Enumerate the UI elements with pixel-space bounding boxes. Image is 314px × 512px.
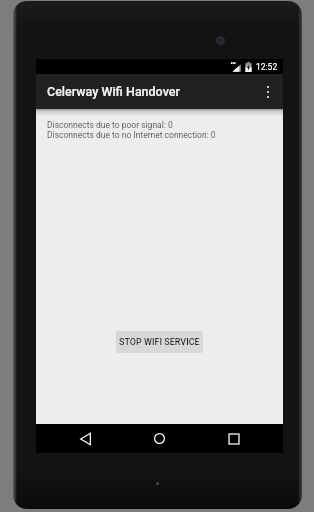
button[interactable]: Home — [139, 424, 180, 453]
button[interactable]: STOP WIFI SERVICE — [116, 331, 203, 353]
staticText: STOP WIFI SERVICE — [119, 337, 200, 348]
button[interactable]: Back — [65, 424, 106, 453]
staticText: 12:52 — [256, 62, 278, 72]
button[interactable]: Recent apps — [213, 424, 254, 453]
staticText: Disconnects due to poor signal: 0 — [47, 120, 173, 130]
button[interactable]: More options — [253, 74, 283, 109]
staticText: Celerway Wifi Handover — [47, 84, 180, 99]
staticText: Disconnects due to no Internet connectio… — [47, 130, 216, 140]
